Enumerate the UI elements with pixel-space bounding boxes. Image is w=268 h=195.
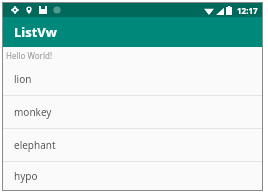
staticText: hypo	[14, 169, 38, 183]
button[interactable]: elephant	[3, 129, 262, 161]
button[interactable]: lion	[3, 63, 262, 95]
staticText: monkey	[14, 105, 52, 119]
staticText: ListVw	[14, 23, 57, 41]
button[interactable]: monkey	[3, 96, 262, 128]
staticText: lion	[14, 72, 32, 86]
staticText: 12:17	[237, 5, 258, 16]
staticText: Hello World!	[6, 50, 53, 61]
staticText: elephant	[14, 138, 56, 152]
button[interactable]: ListVw	[3, 17, 262, 47]
button[interactable]: hypo	[3, 162, 262, 190]
